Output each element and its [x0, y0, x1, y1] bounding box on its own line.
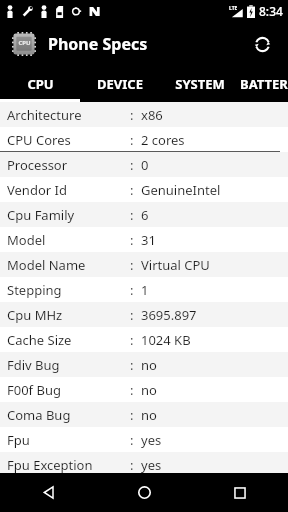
staticText: Phone Specs: [48, 33, 148, 55]
staticText: Cpu Family: [7, 206, 75, 224]
button[interactable]: Cpu MHz: [0, 302, 288, 327]
staticText: SYSTEM: [175, 75, 225, 93]
button[interactable]: Cpu Family: [0, 202, 288, 227]
staticText: :: [130, 181, 134, 199]
button[interactable]: SYSTEM: [160, 66, 240, 102]
button[interactable]: Processor: [0, 152, 288, 177]
staticText: :: [130, 306, 134, 324]
button[interactable]: Home: [96, 473, 192, 512]
button[interactable]: Fpu: [0, 427, 288, 452]
staticText: :: [130, 406, 134, 424]
button[interactable]: Fdiv Bug: [0, 352, 288, 377]
staticText: :: [130, 131, 134, 149]
button[interactable]: CPU: [0, 66, 80, 102]
staticText: LTE: [229, 5, 238, 12]
staticText: 4: [141, 481, 149, 499]
staticText: yes: [141, 456, 162, 474]
staticText: :: [130, 456, 134, 474]
staticText: :: [130, 281, 134, 299]
staticText: :: [130, 381, 134, 399]
button[interactable]: Back: [0, 473, 96, 512]
staticText: CPU: [27, 75, 54, 93]
staticText: F00f Bug: [7, 381, 61, 399]
staticText: Processor: [7, 156, 68, 174]
staticText: :: [130, 156, 134, 174]
button[interactable]: Coma Bug: [0, 402, 288, 427]
staticText: Cpu MHz: [7, 306, 63, 324]
button[interactable]: Stepping: [0, 277, 288, 302]
staticText: yes: [141, 431, 162, 449]
staticText: Vendor Id: [7, 181, 67, 199]
staticText: Cpuid Level: [7, 481, 78, 499]
staticText: :: [130, 231, 134, 249]
staticText: no: [141, 356, 157, 374]
staticText: Stepping: [7, 281, 62, 299]
staticText: :: [130, 331, 134, 349]
button[interactable]: Architecture: [0, 102, 288, 127]
staticText: :: [130, 206, 134, 224]
staticText: no: [141, 381, 157, 399]
button[interactable]: Refresh: [246, 28, 278, 60]
staticText: 1: [141, 281, 149, 299]
staticText: :: [130, 356, 134, 374]
staticText: :: [130, 256, 134, 274]
staticText: 3695.897: [141, 306, 197, 324]
staticText: Fpu Exception: [7, 456, 93, 474]
button[interactable]: CPU Cores: [0, 127, 288, 152]
button[interactable]: Cache Size: [0, 327, 288, 352]
staticText: Fpu: [7, 431, 30, 449]
staticText: :: [130, 106, 134, 124]
button[interactable]: Vendor Id: [0, 177, 288, 202]
staticText: 6: [141, 206, 149, 224]
staticText: :: [130, 431, 134, 449]
staticText: Cache Size: [7, 331, 72, 349]
staticText: 31: [141, 231, 156, 249]
button[interactable]: BATTERY: [240, 66, 288, 102]
staticText: Model: [7, 231, 46, 249]
button[interactable]: DEVICE: [80, 66, 160, 102]
staticText: 1024 KB: [141, 331, 191, 349]
staticText: 2 cores: [141, 131, 185, 149]
button[interactable]: Model: [0, 227, 288, 252]
staticText: x86: [141, 106, 163, 124]
staticText: Coma Bug: [7, 406, 71, 424]
button[interactable]: Recent apps: [192, 473, 288, 512]
staticText: Model Name: [7, 256, 86, 274]
button[interactable]: Model Name: [0, 252, 288, 277]
staticText: GenuineIntel: [141, 181, 221, 199]
button[interactable]: F00f Bug: [0, 377, 288, 402]
staticText: Virtual CPU: [141, 256, 210, 274]
staticText: no: [141, 406, 157, 424]
button[interactable]: Fpu Exception: [0, 452, 288, 477]
staticText: 0: [141, 156, 149, 174]
staticText: CPU Cores: [7, 131, 71, 149]
staticText: BATTERY: [240, 75, 288, 93]
button[interactable]: Cpuid Level: [0, 477, 288, 502]
staticText: Fdiv Bug: [7, 356, 60, 374]
staticText: DEVICE: [97, 75, 143, 93]
staticText: 8:34: [259, 3, 283, 19]
staticText: Architecture: [7, 106, 82, 124]
staticText: CPU: [18, 39, 31, 47]
